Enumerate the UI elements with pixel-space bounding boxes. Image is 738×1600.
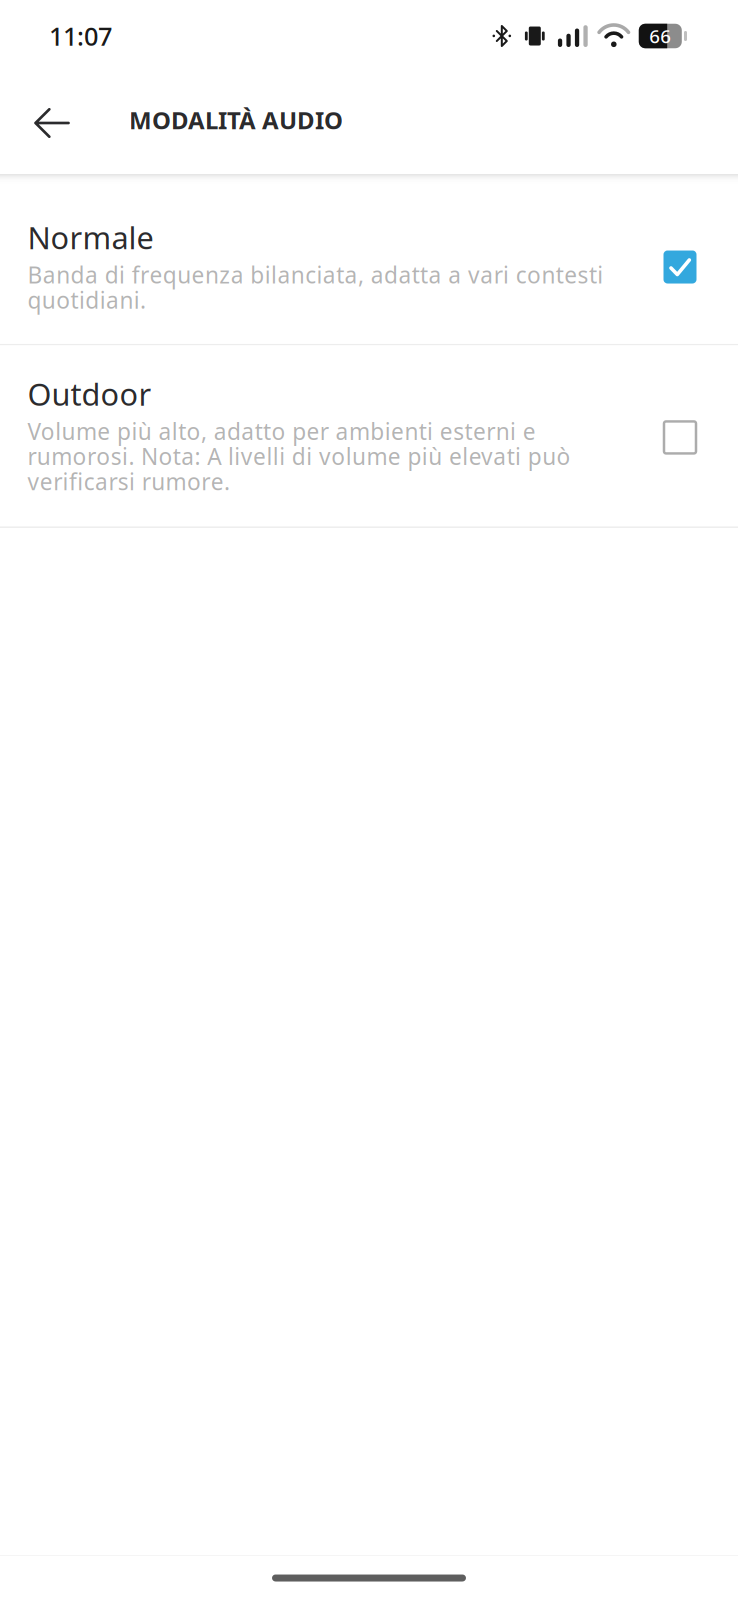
staticText: Volume più alto, adatto per ambienti est… bbox=[27, 416, 570, 496]
button[interactable]: Outdoor bbox=[0, 345, 738, 526]
staticText: 11:07 bbox=[49, 19, 112, 53]
staticText: MODALITÀ AUDIO bbox=[129, 104, 343, 136]
button[interactable]: Back bbox=[16, 86, 88, 160]
staticText: Banda di frequenza bilanciata, adatta a … bbox=[27, 260, 603, 315]
button[interactable]: Normale bbox=[0, 184, 738, 344]
staticText: 66 bbox=[649, 24, 671, 48]
staticText: Outdoor bbox=[27, 373, 151, 414]
staticText: Normale bbox=[27, 217, 153, 258]
